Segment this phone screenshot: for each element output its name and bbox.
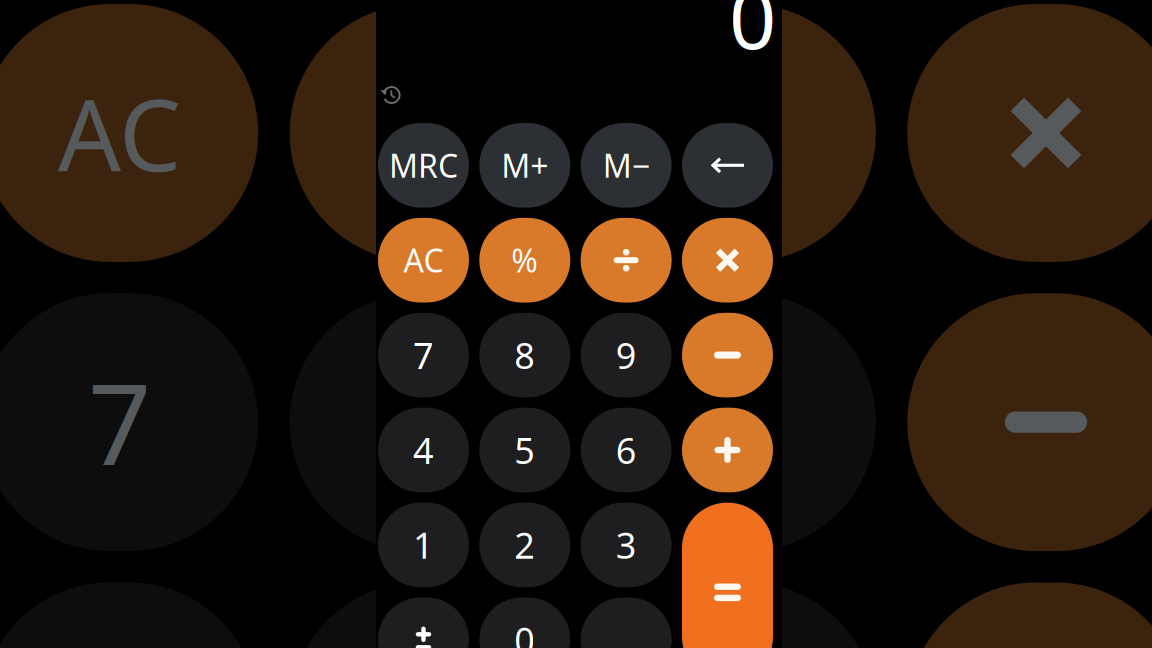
button[interactable]: History <box>380 84 402 106</box>
staticText: AC <box>58 67 181 198</box>
button[interactable]: Add <box>682 408 773 492</box>
button[interactable]: 3 <box>581 503 672 587</box>
staticText: 4 <box>413 426 434 474</box>
staticText: M+ <box>501 144 548 187</box>
button[interactable]: 6 <box>581 408 672 492</box>
staticText: 0 <box>514 616 535 648</box>
staticText: 3 <box>616 521 637 569</box>
staticText: 9 <box>616 331 637 379</box>
staticText: 9 <box>706 349 769 496</box>
button[interactable]: Delete <box>682 123 773 208</box>
staticText: 7 <box>413 331 434 379</box>
button[interactable]: 1 <box>378 503 469 587</box>
button[interactable]: MRC <box>378 123 469 208</box>
staticText: 0 <box>729 0 776 72</box>
staticText: % <box>387 67 469 198</box>
staticText: AC <box>403 239 443 281</box>
button[interactable]: 4 <box>378 408 469 492</box>
button[interactable]: AC <box>378 218 469 302</box>
staticText: 5 <box>397 638 460 648</box>
staticText: 7 <box>88 349 151 496</box>
button[interactable]: 8 <box>479 313 570 397</box>
staticText: 2 <box>514 521 535 569</box>
staticText: 6 <box>616 426 637 474</box>
button[interactable]: 7 <box>378 313 469 397</box>
button[interactable]: Equals <box>682 503 773 648</box>
staticText: 8 <box>397 349 460 496</box>
button[interactable]: 5 <box>479 408 570 492</box>
button[interactable]: Divide <box>581 218 672 302</box>
button[interactable]: M+ <box>479 123 570 208</box>
button[interactable]: Multiply <box>682 218 773 302</box>
staticText: M− <box>603 144 650 187</box>
staticText: MRC <box>389 144 458 187</box>
staticText: 8 <box>514 331 535 379</box>
button[interactable]: M− <box>581 123 672 208</box>
button[interactable]: . <box>581 597 672 648</box>
staticText: 1 <box>413 521 434 569</box>
button[interactable]: 9 <box>581 313 672 397</box>
button[interactable]: 2 <box>479 503 570 587</box>
button[interactable]: % <box>479 218 570 302</box>
button[interactable]: Subtract <box>682 313 773 397</box>
button[interactable]: 0 <box>479 597 570 648</box>
staticText: % <box>511 239 538 281</box>
staticText: 5 <box>514 426 535 474</box>
button[interactable]: Plus minus <box>378 597 469 648</box>
